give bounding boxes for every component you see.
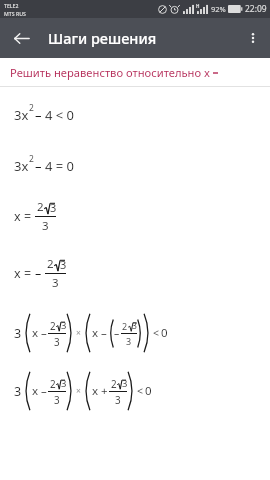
staticText: x: [92, 325, 99, 341]
staticText: Шаги решения: [48, 28, 157, 48]
button[interactable]: Back: [6, 23, 36, 53]
staticText: 2: [50, 319, 56, 332]
staticText: x: [92, 383, 99, 399]
staticText: 3: [50, 200, 57, 215]
staticText: 3: [122, 377, 128, 390]
staticText: – 4 < 0: [35, 106, 74, 124]
staticText: x: [32, 325, 39, 341]
button[interactable]: Решить неравенство относительно x: [0, 58, 270, 86]
staticText: 2: [50, 377, 56, 390]
staticText: –: [41, 325, 47, 341]
staticText: 2: [29, 153, 34, 165]
staticText: – 4 = 0: [35, 157, 74, 175]
staticText: 2: [29, 102, 34, 114]
staticText: –: [101, 325, 107, 341]
staticText: ×: [76, 385, 81, 397]
staticText: x: [32, 383, 39, 399]
staticText: <: [137, 384, 144, 398]
staticText: <: [153, 326, 160, 340]
staticText: H: [196, 3, 200, 9]
staticText: –: [114, 326, 120, 340]
staticText: 3: [132, 320, 137, 332]
staticText: 3: [14, 325, 22, 342]
staticText: 3: [54, 393, 60, 406]
staticText: 2: [122, 320, 128, 332]
staticText: Решить неравенство относительно x: [10, 65, 210, 80]
staticText: 3: [61, 377, 67, 390]
staticText: 3: [54, 335, 60, 348]
staticText: 3: [60, 257, 67, 272]
staticText: 2: [111, 377, 117, 390]
staticText: 2: [37, 199, 44, 215]
button[interactable]: More options: [238, 23, 268, 53]
staticText: TELE2: [4, 2, 19, 9]
staticText: 3: [61, 319, 67, 332]
staticText: x: [14, 265, 21, 282]
staticText: =: [24, 265, 32, 282]
staticText: 3x: [14, 157, 29, 175]
staticText: 2: [47, 256, 54, 272]
staticText: –: [35, 265, 42, 282]
staticText: 92%: [211, 4, 226, 14]
staticText: 3: [14, 383, 22, 400]
staticText: +: [101, 383, 108, 399]
staticText: x: [14, 208, 21, 225]
staticText: –: [41, 383, 47, 399]
staticText: 0: [145, 383, 152, 399]
staticText: ×: [76, 327, 81, 339]
staticText: =: [24, 208, 32, 225]
staticText: 3: [126, 335, 132, 347]
staticText: 3: [52, 275, 59, 291]
staticText: 3x: [14, 106, 29, 124]
staticText: 0: [161, 325, 168, 341]
staticText: 3: [115, 393, 121, 406]
staticText: MTS RUS: [4, 10, 26, 17]
staticText: 22:09: [245, 3, 267, 15]
staticText: 3: [42, 218, 49, 234]
